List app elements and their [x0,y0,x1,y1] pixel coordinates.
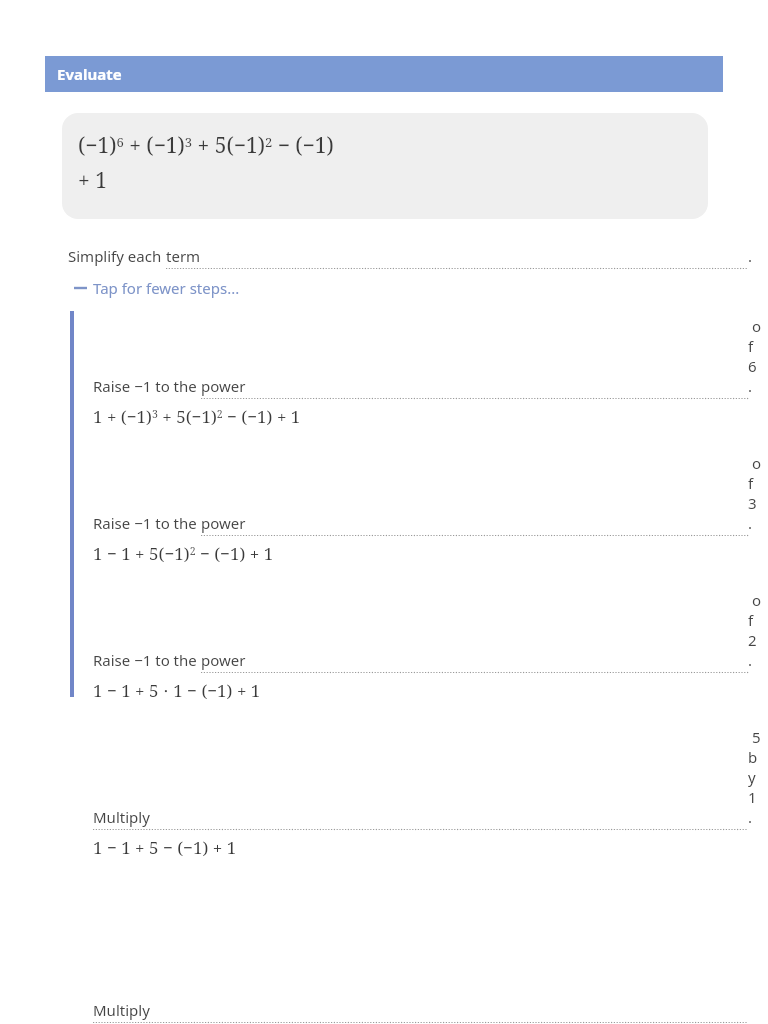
staticText: power [201,376,246,396]
staticText: 1 − 1 + 5 ⋅ 1 − (−1) + 1 [93,679,261,702]
button[interactable]: Evaluate [45,56,723,92]
staticText: + 1 [78,166,107,195]
staticText: Raise −1 to the [93,513,201,533]
staticText: Simplify each [68,246,166,266]
staticText: Raise −1 to the [93,650,201,670]
staticText: power [201,650,246,670]
staticText: (−1)6 + (−1)3 + 5(−1)2 − (−1) [78,131,334,160]
button[interactable]: (−1)6 + (−1)3 + 5(−1)2 − (−1) [62,113,708,219]
staticText: 1 − 1 + 5 − (−1) + 1 [93,836,237,859]
staticText: power [201,513,246,533]
staticText: Multiply [93,1000,150,1020]
button[interactable]: Raise −1 to the [93,590,748,702]
button[interactable]: Raise −1 to the [93,316,748,428]
staticText: term [166,246,201,266]
staticText: Raise −1 to the [93,376,201,396]
staticText: Multiply [93,807,150,827]
button[interactable]: Raise −1 to the [93,453,748,565]
staticText: Evaluate [57,64,122,84]
staticText: Tap for fewer steps... [93,278,240,298]
staticText: 1 + (−1)3 + 5(−1)2 − (−1) + 1 [93,405,301,428]
button[interactable]: Multiply [93,727,748,859]
staticText: 1 − 1 + 5(−1)2 − (−1) + 1 [93,542,274,565]
button[interactable]: Multiply [93,884,748,1024]
button[interactable]: Tap for fewer steps... [74,276,240,300]
